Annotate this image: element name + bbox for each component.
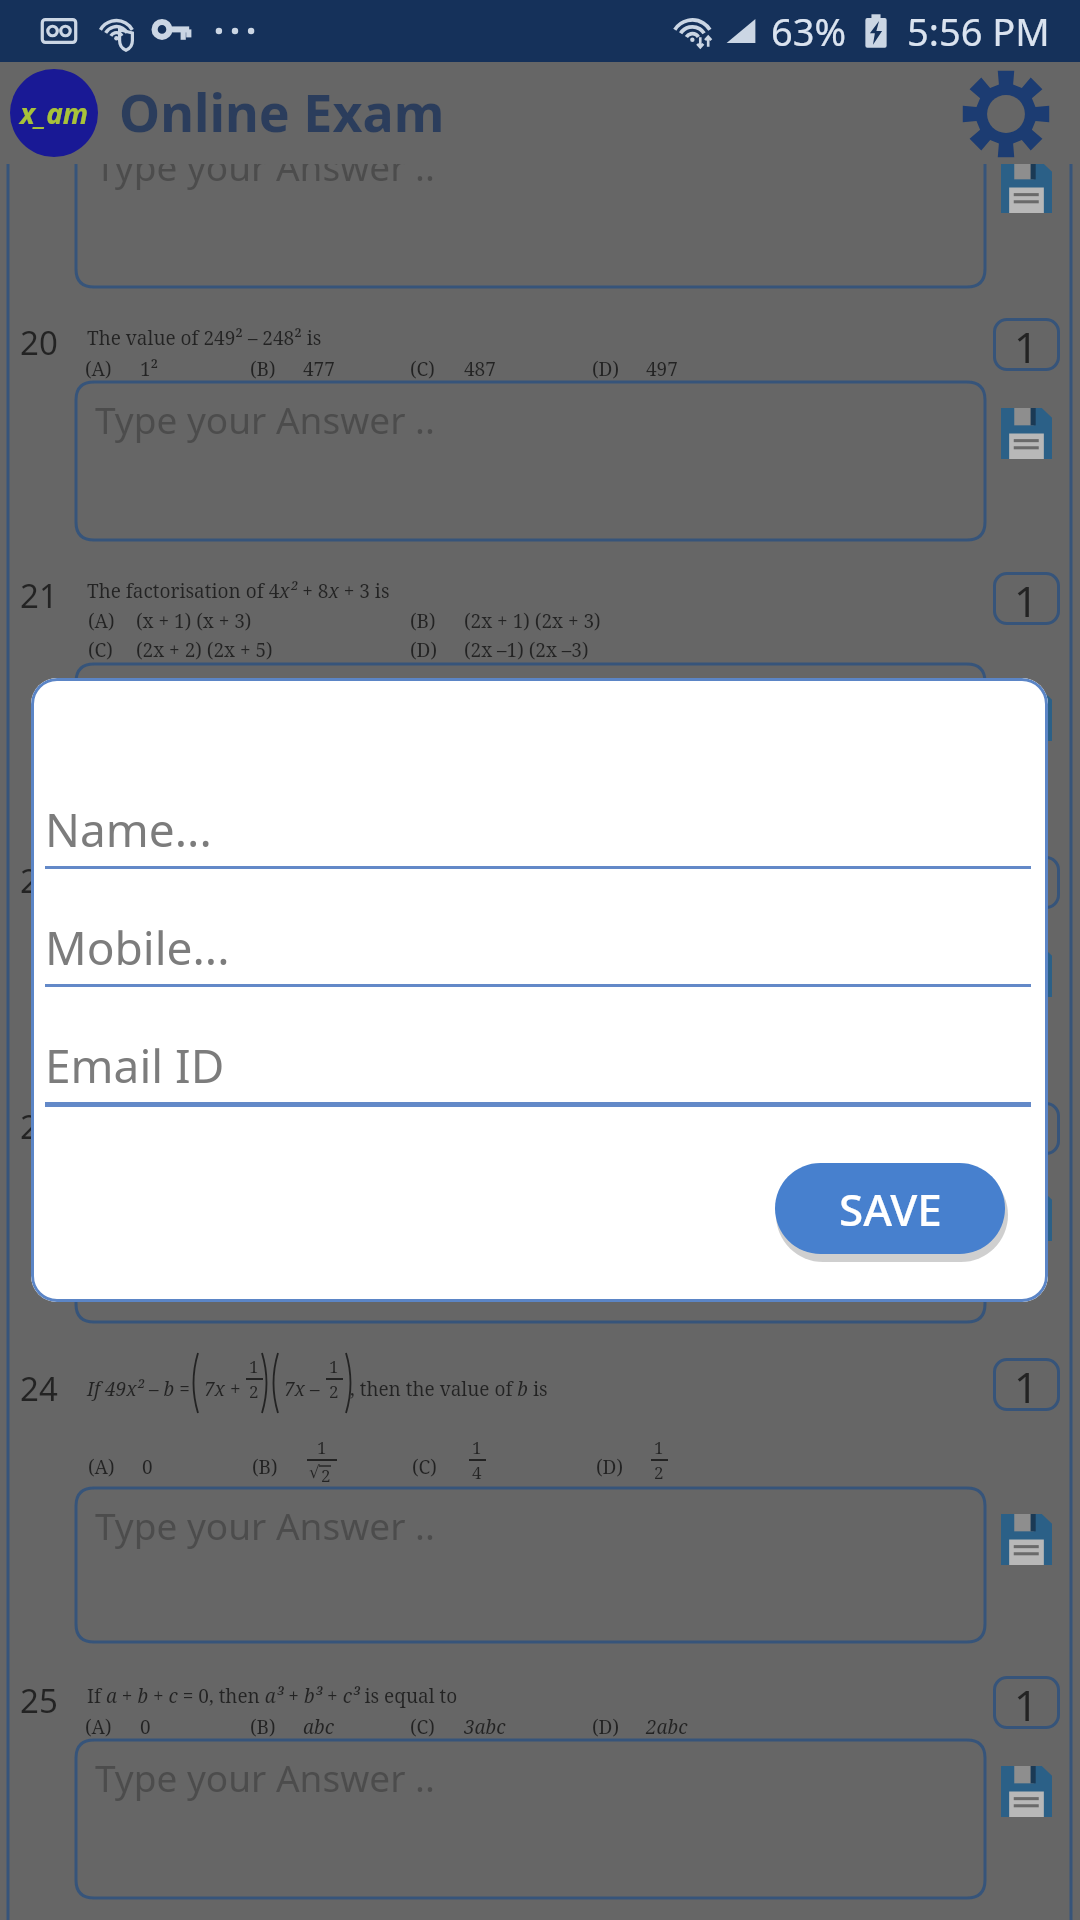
button[interactable]: Marks [993,572,1060,625]
staticText: Type your Answer .. [95,1500,435,1550]
staticText: x_am [20,94,89,132]
staticText: (2x + 2) (2x + 5) [136,637,273,663]
staticText: 7x + [204,1376,241,1402]
staticText: 497 [646,356,678,382]
staticText: Type your Answer .. [95,394,435,444]
button[interactable]: App logo [10,69,98,157]
staticText: (A) [85,1714,112,1740]
staticText: Type your Answer .. [95,676,435,726]
staticText: 0 [140,1714,151,1740]
staticText: 25 [20,1678,58,1723]
staticText: 1 [1014,572,1039,625]
staticText: 1 [1014,856,1039,909]
button[interactable]: Mobile... [45,897,1031,997]
staticText: 2 [654,1461,664,1484]
staticText: Email ID [45,1034,225,1097]
staticText: Mobile... [45,916,230,979]
button[interactable]: SAVE [775,1163,1005,1254]
staticText: 477 [303,356,335,382]
staticText: Type your Answer .. [95,1752,435,1802]
staticText: 7x – [284,1376,320,1402]
staticText: The value of 249² – 248² is [87,325,322,351]
staticText: 1 [249,1355,259,1378]
staticText: If a + b + c = 0, then a³ + b³ + c³ is e… [87,1683,458,1709]
staticText: 487 [464,356,496,382]
staticText: (D) [596,1454,623,1480]
staticText: (B) [410,608,436,634]
staticText: 23 [20,1104,58,1149]
staticText: 24 [20,1366,58,1411]
staticText: (D) [410,637,437,663]
staticText: (D) [592,1714,619,1740]
staticText: (A) [85,356,112,382]
staticText: (2x + 1) (2x + 3) [464,608,601,634]
staticText: 20 [20,320,58,365]
staticText: 1 [1014,318,1039,371]
button[interactable]: Marks [993,318,1060,371]
staticText: 1 [654,1436,664,1459]
staticText: (A) [88,1454,115,1480]
button[interactable]: Marks [993,1676,1060,1729]
staticText: √ [309,1462,320,1482]
staticText: (A) [88,608,115,634]
staticText: (B) [250,356,276,382]
button[interactable]: Marks [993,1358,1060,1411]
button[interactable]: Marks [993,1102,1060,1155]
staticText: abc [303,1714,334,1740]
staticText: Type your Answer .. [95,932,435,982]
staticText: Name... [45,798,212,861]
staticText: Type your Answer .. [95,141,435,191]
staticText: (C) [410,356,435,382]
staticText: (x + 1) (x + 3) [136,608,252,634]
staticText: 2 [329,1380,339,1403]
staticText: 21 [20,573,58,618]
staticText: 2abc [646,1714,688,1740]
button[interactable]: Email ID [45,1015,1031,1115]
staticText: 63% [771,5,847,57]
staticText: If 49x² – b = [87,1376,190,1402]
button[interactable]: Name... [45,779,1031,879]
staticText: , then the value of b is [350,1376,548,1402]
staticText: (C) [88,637,113,663]
staticText: 1 [317,1436,327,1459]
staticText: (2x –1) (2x –3) [464,637,589,663]
staticText: 1 [1014,1676,1039,1729]
staticText: 1 [1014,1102,1039,1155]
staticText: SAVE [839,1179,942,1239]
staticText: 1 [329,1355,339,1378]
staticText: 2 [321,1464,331,1487]
staticText: 4 [472,1461,482,1484]
staticText: 1² [140,356,159,382]
staticText: 1 [1014,1358,1039,1411]
button[interactable]: Settings [958,66,1054,162]
staticText: 5:56 PM [907,5,1050,57]
staticText: 3abc [464,1714,506,1740]
staticText: (B) [252,1454,278,1480]
staticText: 2 [249,1380,259,1403]
staticText: The factorisation of 4x² + 8x + 3 is [87,578,390,604]
staticText: (C) [412,1454,437,1480]
staticText: 0 [142,1454,153,1480]
staticText: (B) [250,1714,276,1740]
staticText: (C) [410,1714,435,1740]
staticText: (D) [592,356,619,382]
staticText: 22 [20,858,58,903]
staticText: 1 [472,1436,482,1459]
staticText: Online Exam [119,76,445,147]
button[interactable]: Marks [993,856,1060,909]
